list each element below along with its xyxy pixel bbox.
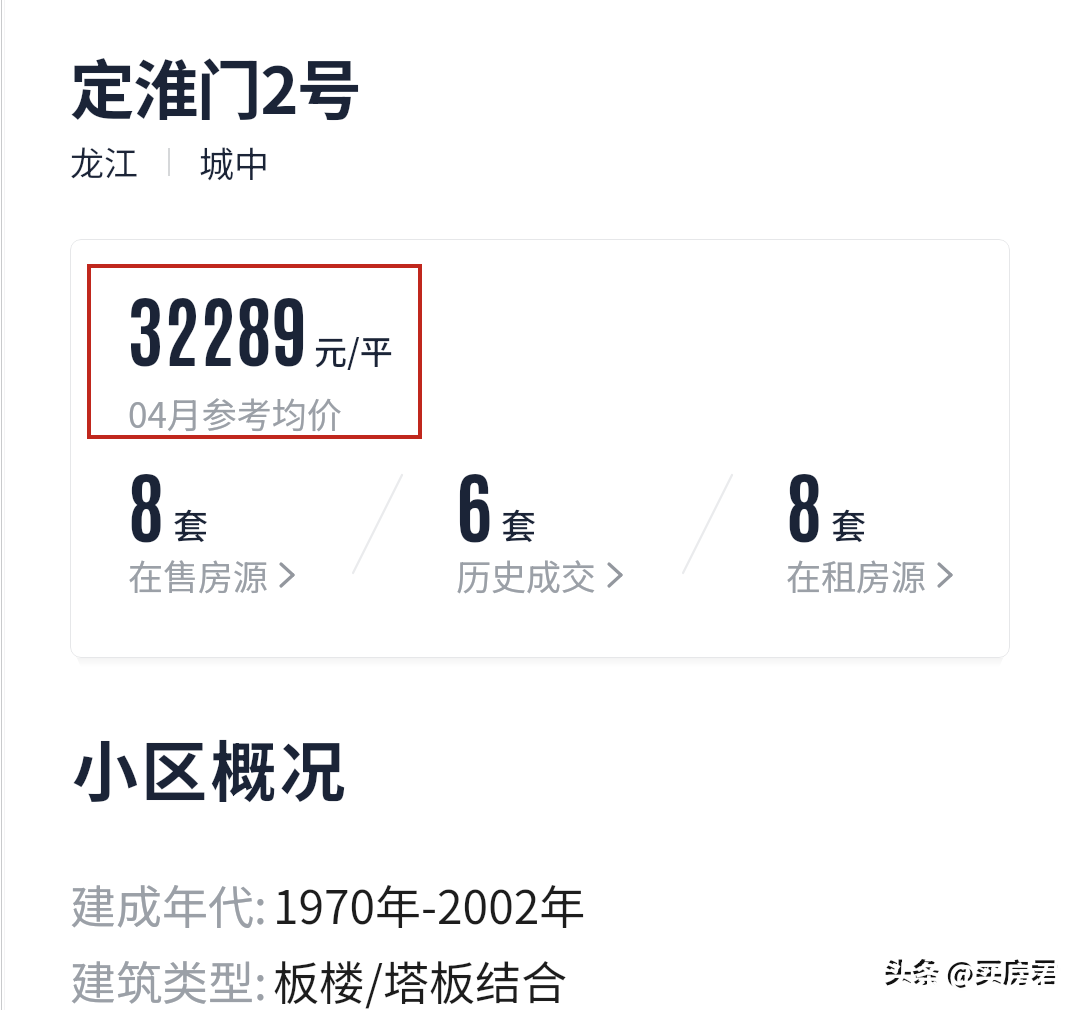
button[interactable]: 历史成交 [456, 452, 623, 604]
staticText: 城中 [199, 136, 270, 187]
staticText: 元/平 [314, 326, 393, 374]
staticText: 建成年代: [70, 871, 267, 938]
staticText: 在售房源 [128, 549, 269, 600]
staticText: 在租房源 [786, 549, 927, 600]
button[interactable]: 在售房源 [128, 452, 295, 604]
staticText: 定淮门2号 [70, 39, 361, 133]
staticText: 1970年-2002年 [273, 871, 586, 938]
staticText: 6 [456, 452, 493, 553]
staticText: 套 [831, 498, 867, 549]
staticText: 历史成交 [456, 549, 597, 600]
staticText: 头条 @买房君 [884, 951, 1059, 992]
staticText: 8 [786, 452, 823, 553]
staticText: 板楼/塔板结合 [273, 947, 568, 1010]
staticText: 32289 [127, 276, 308, 377]
staticText: 小区概况 [72, 719, 349, 815]
staticText: 头条 @买房君 [887, 954, 1062, 995]
staticText: 龙江 [70, 137, 138, 186]
staticText: 套 [501, 498, 537, 549]
staticText: 套 [173, 498, 209, 549]
staticText: 8 [128, 452, 165, 553]
staticText: 04月参考均价 [128, 387, 342, 438]
button[interactable]: 在租房源 [786, 452, 953, 604]
staticText: 建筑类型: [70, 947, 267, 1010]
